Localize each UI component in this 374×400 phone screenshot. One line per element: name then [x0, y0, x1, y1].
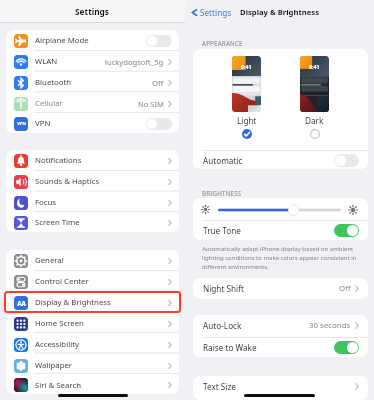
button[interactable]: Screen Time	[6, 213, 179, 232]
staticText: Screen Time	[35, 217, 80, 228]
staticText: Bluetooth	[35, 77, 72, 88]
button[interactable]: Home Screen	[6, 313, 179, 334]
staticText: Raise to Wake	[203, 342, 257, 353]
button[interactable]: Control Center	[6, 271, 179, 292]
staticText: Light	[237, 115, 257, 126]
button[interactable]: Cellular	[6, 93, 179, 114]
staticText: Notifications	[35, 155, 82, 166]
staticText: APPEARANCE	[202, 39, 243, 47]
staticText: Cellular	[35, 98, 63, 109]
button[interactable]: WLAN	[6, 51, 179, 72]
button[interactable]: AA	[6, 292, 179, 313]
staticText: VPN	[35, 118, 51, 129]
button[interactable]: VPN	[6, 114, 179, 133]
button[interactable]: Siri & Search	[6, 376, 179, 394]
staticText: Settings	[75, 6, 110, 17]
staticText: AA	[17, 299, 26, 307]
button[interactable]: Focus	[6, 192, 179, 213]
staticText: Display & Brightness	[240, 7, 320, 17]
button[interactable]: Accessibility	[6, 334, 179, 355]
staticText: Airplane Mode	[35, 35, 89, 46]
button[interactable]: Notifications	[6, 150, 179, 171]
button[interactable]: Toggle off	[146, 35, 172, 47]
staticText: BRIGHTNESS	[202, 189, 242, 197]
staticText: Off	[152, 78, 164, 88]
button[interactable]: Airplane Mode	[6, 30, 179, 51]
staticText: Off	[339, 283, 351, 294]
staticText: 9:41	[241, 63, 252, 70]
staticText: Display & Brightness	[35, 297, 111, 308]
staticText: Night Shift	[203, 283, 244, 294]
button[interactable]: Settings	[189, 5, 234, 20]
staticText: WLAN	[35, 56, 58, 67]
button[interactable]: Night Shift	[193, 278, 368, 299]
button[interactable]: 9:41	[232, 56, 261, 139]
staticText: Wallpaper	[35, 360, 73, 371]
button[interactable]: Wallpaper	[6, 355, 179, 376]
staticText: luckydogsoft_5g	[105, 57, 164, 67]
staticText: Settings	[200, 7, 232, 18]
staticText: 30 seconds	[309, 320, 351, 331]
staticText: Control Center	[35, 276, 89, 287]
staticText: No SIM	[138, 99, 164, 109]
staticText: General	[35, 255, 64, 266]
button[interactable]: Toggle off	[334, 154, 359, 167]
staticText: Automatic	[203, 155, 243, 166]
button[interactable]: 9:41	[300, 56, 329, 139]
button[interactable]: Auto-Lock	[193, 315, 368, 336]
staticText: Dark	[305, 115, 324, 126]
button[interactable]: True Tone	[193, 220, 368, 240]
button[interactable]: General	[6, 250, 179, 271]
button[interactable]: Toggle on	[334, 224, 359, 237]
button[interactable]: Automatic	[193, 150, 368, 169]
staticText: True Tone	[203, 225, 241, 236]
staticText: Focus	[35, 197, 57, 208]
button[interactable]: Sounds & Haptics	[6, 171, 179, 192]
staticText: Siri & Search	[35, 380, 81, 391]
button[interactable]: Toggle on	[334, 341, 359, 354]
button[interactable]: Toggle off	[146, 118, 172, 130]
staticText: Sounds & Haptics	[35, 176, 100, 187]
staticText: Text Size	[203, 381, 236, 392]
staticText: 9:41	[309, 63, 320, 70]
button[interactable]: Bluetooth	[6, 72, 179, 93]
staticText: VPN	[17, 121, 26, 127]
button[interactable]: Raise to Wake	[193, 337, 368, 357]
staticText: Accessibility	[35, 339, 79, 350]
button[interactable]: Text Size	[193, 376, 368, 397]
staticText: Home Screen	[35, 318, 84, 329]
staticText: Automatically adapt iPhone display based…	[202, 245, 362, 271]
staticText: Auto-Lock	[203, 320, 242, 331]
